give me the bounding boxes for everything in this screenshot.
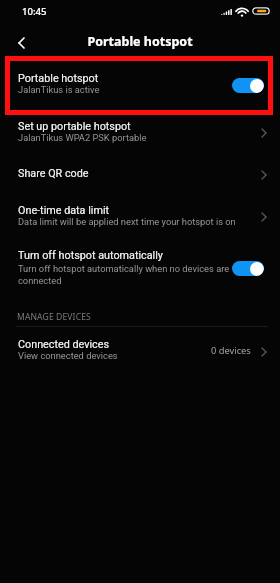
button[interactable]: Connected devices [0,332,280,366]
staticText: One-time data limit [18,204,110,217]
button[interactable]: Set up portable hotspot [0,114,280,161]
staticText: Portable hotspot [87,33,193,50]
staticText: Set up portable hotspot [18,120,131,133]
staticText: 0 devices [211,344,251,357]
other: Toggle [232,261,264,276]
staticText: JalanTikus WPA2 PSK portable [18,132,147,143]
button[interactable]: Portable hotspot [0,62,280,114]
staticText: Data limit will be applied next time you… [18,216,236,227]
button[interactable]: Back [7,29,35,57]
staticText: View connected devices [18,350,118,361]
staticText: 10:45 [22,5,47,18]
other: Toggle [232,78,264,93]
button[interactable]: One-time data limit [0,190,280,240]
staticText: Turn off hotspot automatically when no d… [18,263,231,286]
staticText: Turn off hotspot automatically [18,249,163,262]
staticText: JalanTikus is active [18,84,100,95]
staticText: Portable hotspot [18,72,99,85]
staticText: Share QR code [18,167,89,180]
button[interactable]: Share QR code [0,161,280,190]
staticText: Connected devices [18,338,110,351]
staticText: MANAGE DEVICES [17,311,91,323]
button[interactable]: Turn off hotspot automatically [0,240,280,295]
